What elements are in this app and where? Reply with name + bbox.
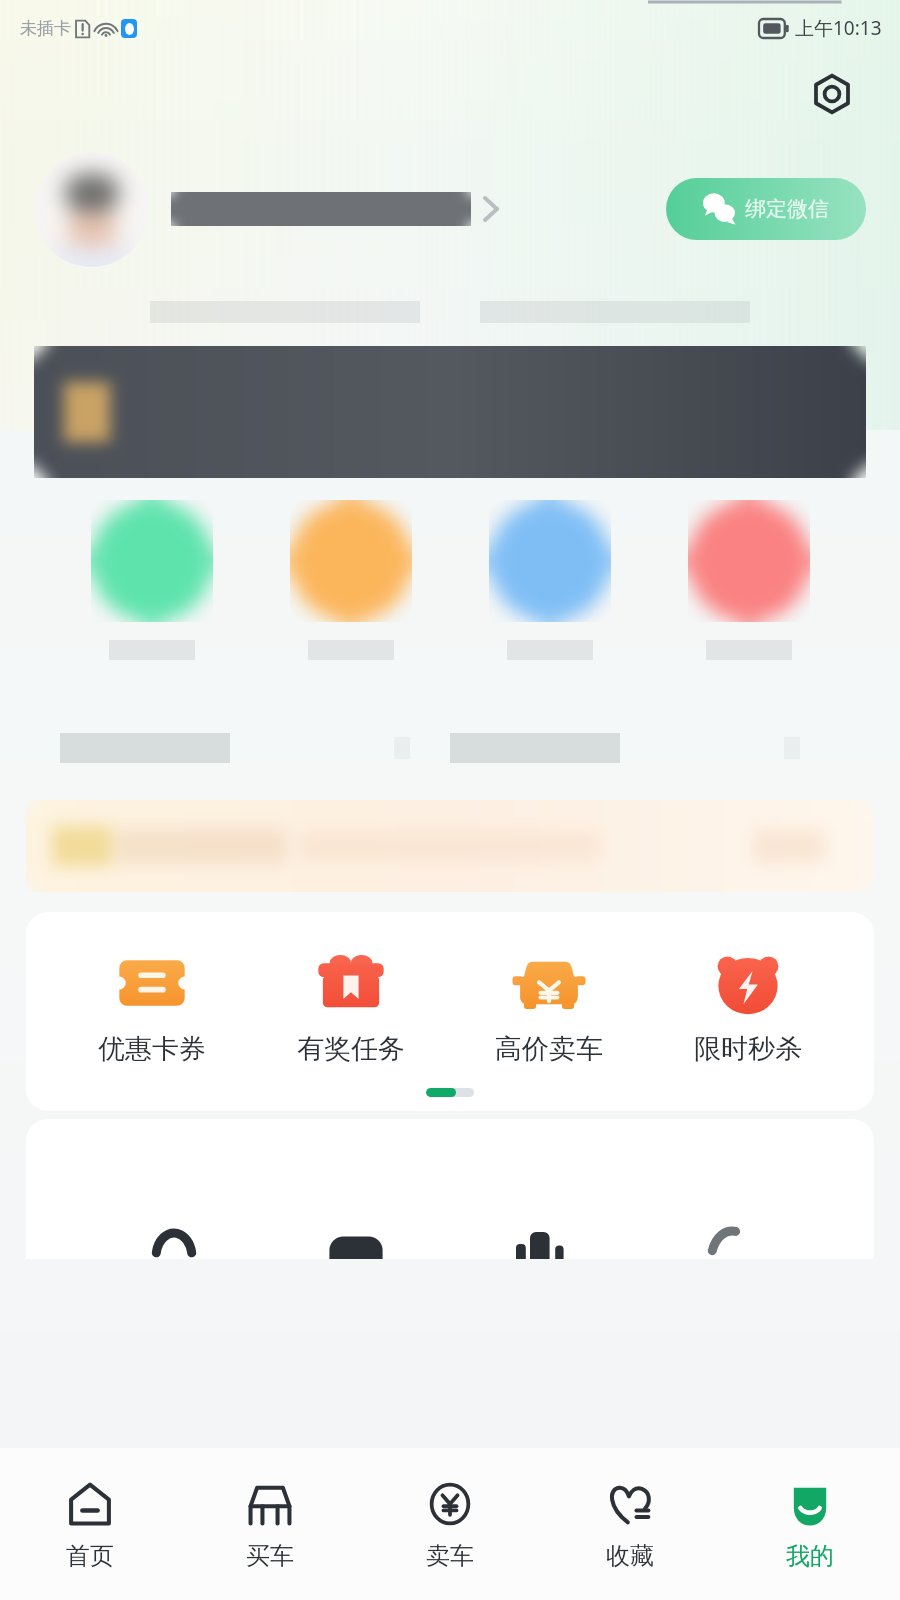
staticText: 我的 [786,1541,834,1571]
staticText: 买车 [246,1541,294,1571]
button[interactable]: 高价卖车 [469,942,629,1066]
button[interactable]: 买车 [180,1448,360,1600]
staticText: 优惠卡券 [98,1032,206,1066]
button[interactable] [251,500,450,660]
button[interactable]: 有奖任务 [271,942,431,1066]
button[interactable]: 收藏 [540,1448,720,1600]
button[interactable]: Settings [808,70,856,118]
button[interactable] [450,733,840,763]
staticText: 上午10:13 [795,15,882,41]
button[interactable] [649,500,848,660]
staticText: 绑定微信 [745,196,829,222]
button[interactable]: 优惠卡券 [72,942,232,1066]
button[interactable] [60,733,450,763]
button[interactable] [26,800,874,892]
staticText: 未插卡 [20,18,71,39]
button[interactable] [450,500,649,660]
staticText: 限时秒杀 [694,1032,802,1066]
button[interactable]: 卖车 [360,1448,540,1600]
staticText: 首页 [66,1541,114,1571]
button[interactable]: 限时秒杀 [668,942,828,1066]
button[interactable]: 我的 [720,1448,900,1600]
staticText: 有奖任务 [297,1032,405,1066]
button[interactable] [34,152,149,267]
staticText: 高价卖车 [495,1032,603,1066]
staticText: 收藏 [606,1541,654,1571]
button[interactable]: 首页 [0,1448,180,1600]
button[interactable]: 绑定微信 [666,178,866,240]
button[interactable] [34,346,866,478]
staticText: 卖车 [426,1541,474,1571]
button[interactable] [52,500,251,660]
